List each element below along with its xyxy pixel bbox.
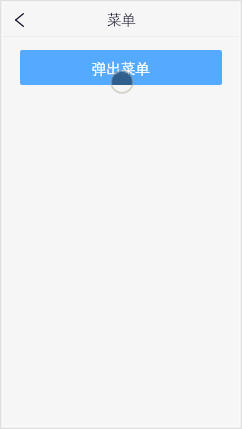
button[interactable]: Back	[0, 0, 36, 36]
staticText: 菜单	[107, 11, 136, 29]
button[interactable]: 弹出菜单	[20, 50, 222, 85]
staticText: 弹出菜单	[92, 60, 150, 78]
